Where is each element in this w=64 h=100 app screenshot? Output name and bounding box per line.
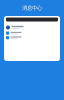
staticText: 消息中心 [22, 5, 42, 11]
